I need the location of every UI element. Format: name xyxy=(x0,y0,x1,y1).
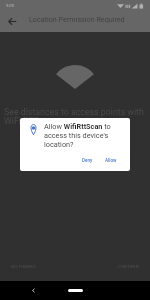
button[interactable]: Back xyxy=(27,284,40,297)
staticText: CONTINUE xyxy=(118,264,140,269)
staticText: See distances to access points with WiFi… xyxy=(4,107,144,126)
button[interactable]: Home xyxy=(68,289,83,292)
button[interactable]: Deny xyxy=(78,155,97,166)
staticText: Location Permission Required xyxy=(29,15,125,23)
staticText: Allow xyxy=(105,158,117,163)
staticText: Deny xyxy=(82,158,93,163)
button[interactable]: NO THANKS xyxy=(6,260,41,273)
button[interactable]: CONTINUE xyxy=(113,260,145,273)
staticText: NO THANKS xyxy=(11,264,36,269)
button[interactable]: Back xyxy=(4,13,21,30)
staticText: Allow WifiRttScan to access this device'… xyxy=(44,122,118,149)
staticText: 9:00 xyxy=(6,3,15,8)
button[interactable]: Allow xyxy=(101,155,121,166)
